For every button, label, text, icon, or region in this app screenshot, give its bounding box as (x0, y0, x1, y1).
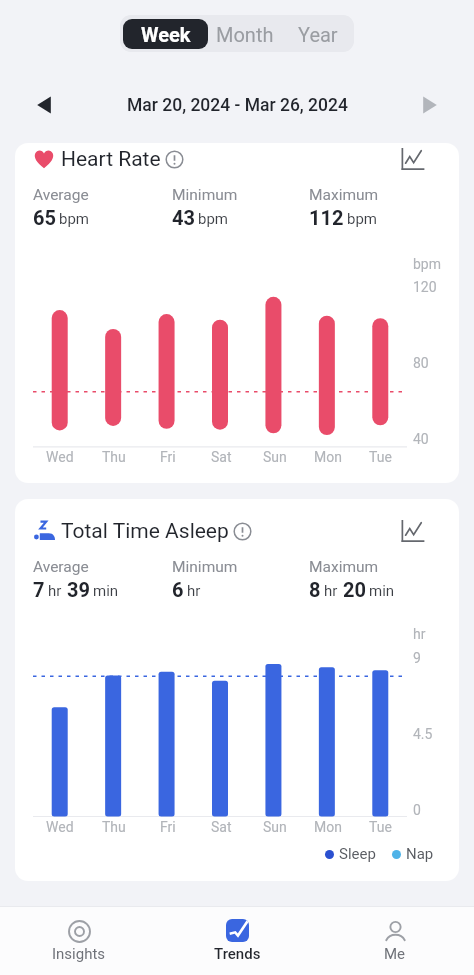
staticText: Week (141, 23, 191, 46)
staticText: bpm (413, 256, 441, 272)
staticText: min (93, 582, 119, 600)
staticText: Average (33, 186, 89, 204)
staticText: Sat (211, 819, 232, 835)
staticText: 112 (309, 206, 344, 229)
staticText: Sun (263, 819, 287, 835)
staticText: Mon (314, 819, 342, 835)
staticText: Insights (52, 945, 106, 963)
staticText: Mon (314, 449, 342, 465)
staticText: 39 (67, 578, 90, 601)
staticText: bpm (198, 210, 228, 228)
staticText: bpm (59, 210, 89, 228)
staticText: Wed (46, 449, 74, 465)
staticText: Heart Rate (61, 147, 161, 172)
staticText: Nap (406, 845, 434, 863)
staticText: Sleep (339, 845, 376, 863)
button[interactable]: Month (208, 19, 281, 49)
staticText: Minimum (172, 558, 238, 576)
staticText: Mar 20, 2024 - Mar 26, 2024 (127, 95, 348, 116)
staticText: Tue (369, 819, 392, 835)
staticText: bpm (347, 210, 377, 228)
staticText: Maximum (309, 558, 379, 576)
staticText: Sun (263, 449, 287, 465)
staticText: Maximum (309, 186, 379, 204)
staticText: 7 (33, 578, 45, 601)
staticText: 40 (413, 431, 429, 447)
button[interactable]: More information (233, 522, 252, 541)
staticText: Wed (46, 819, 74, 835)
button[interactable]: Insights (0, 907, 158, 975)
staticText: hr (187, 582, 201, 600)
staticText: Trends (214, 945, 261, 963)
staticText: min (369, 582, 395, 600)
staticText: 0 (413, 802, 421, 818)
staticText: Fri (160, 819, 176, 835)
button[interactable]: Year (281, 19, 354, 49)
staticText: 8 (309, 578, 321, 601)
staticText: 80 (413, 355, 429, 371)
staticText: 4.5 (413, 726, 433, 742)
staticText: hr (413, 626, 426, 642)
button[interactable]: Previous week (28, 88, 64, 122)
button[interactable]: Next week (410, 88, 446, 122)
staticText: Thu (102, 449, 126, 465)
staticText: Year (298, 23, 338, 46)
staticText: hr (324, 582, 338, 600)
staticText: Fri (160, 449, 176, 465)
staticText: Thu (102, 819, 126, 835)
staticText: 43 (172, 206, 195, 229)
button[interactable]: More information (165, 150, 184, 169)
staticText: Month (216, 23, 274, 46)
staticText: Me (384, 945, 406, 963)
staticText: hr (48, 582, 62, 600)
staticText: 65 (33, 206, 56, 229)
button[interactable]: Open detailed chart (401, 148, 424, 171)
staticText: Minimum (172, 186, 238, 204)
button[interactable]: Me (316, 907, 474, 975)
staticText: Sat (211, 449, 232, 465)
button[interactable]: Heart Rate (15, 143, 459, 483)
button[interactable]: Week (123, 19, 208, 49)
staticText: Total Time Asleep (61, 519, 229, 544)
staticText: 6 (172, 578, 184, 601)
staticText: Average (33, 558, 89, 576)
staticText: 20 (343, 578, 366, 601)
button[interactable]: Total Time Asleep (15, 499, 459, 881)
staticText: 9 (413, 650, 421, 666)
button[interactable]: Trends (158, 907, 316, 975)
button[interactable]: Open detailed chart (401, 520, 424, 543)
staticText: Tue (369, 449, 392, 465)
staticText: 120 (413, 279, 437, 295)
